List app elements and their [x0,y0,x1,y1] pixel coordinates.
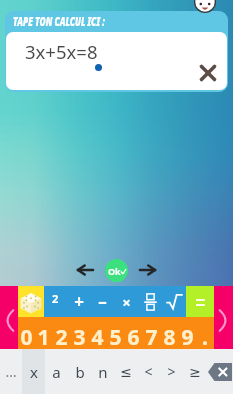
button[interactable]: ≥ [183,349,206,394]
staticText: ≤ [120,364,132,380]
button[interactable]: Clear [195,60,221,86]
staticText: 2 [55,323,68,352]
button[interactable]: b [68,349,91,394]
button[interactable]: 2 [52,317,70,349]
staticText: 9 [181,323,194,352]
staticText: 5 [109,323,122,352]
staticText: b [75,362,85,382]
staticText: 8 [163,323,176,352]
button[interactable]: 7 [142,317,160,349]
staticText: x [30,362,38,382]
staticText: n [98,362,108,382]
staticText: a [52,362,61,382]
button[interactable]: … [0,349,22,394]
button[interactable]: Close parenthesis [214,286,233,349]
button[interactable]: 8 [160,317,178,349]
button[interactable]: Fraction [138,286,162,317]
button[interactable]: Power [44,286,67,317]
button[interactable]: Square root [162,286,186,317]
staticText: 3 [73,323,86,352]
button[interactable]: Previous [72,257,98,283]
button[interactable]: 6 [124,317,142,349]
button[interactable]: 1 [35,317,52,349]
staticText: 6 [127,323,140,352]
button[interactable]: – [90,286,114,317]
button[interactable]: 5 [106,317,124,349]
button[interactable]: 0 [18,317,35,349]
button[interactable]: Equals [186,286,214,317]
staticText: > [167,362,176,381]
staticText: TAPE TON CALCUL ICI : [13,13,105,29]
staticText: ≥ [189,364,201,380]
button[interactable]: a [45,349,68,394]
staticText: + [74,290,84,313]
button[interactable]: ≤ [114,349,137,394]
button[interactable]: > [160,349,183,394]
button[interactable]: Delete [206,349,233,394]
staticText: 1 [37,323,50,352]
button[interactable]: Open parenthesis [0,286,18,349]
button[interactable]: Profile [194,0,216,13]
button[interactable]: 9 [178,317,196,349]
button[interactable]: . [196,317,214,349]
button[interactable]: Ok [105,259,128,282]
staticText: 2 [52,291,59,306]
button[interactable]: < [137,349,160,394]
button[interactable]: 3 [70,317,88,349]
staticText: Ok [108,265,121,277]
staticText: 4 [91,323,104,352]
staticText: 0 [20,323,33,352]
button[interactable]: × [114,286,138,317]
staticText: × [122,292,131,312]
button[interactable]: x [22,349,45,394]
staticText: 3x+5x=8 [25,39,98,64]
staticText: < [144,362,153,381]
staticText: – [98,290,107,313]
button[interactable]: n [91,349,114,394]
staticText: 7 [145,323,158,352]
button[interactable]: Random [18,286,44,317]
staticText: . [202,323,208,352]
button[interactable]: Next [135,257,161,283]
staticText: … [5,362,17,381]
button[interactable]: 4 [88,317,106,349]
button[interactable]: + [67,286,90,317]
